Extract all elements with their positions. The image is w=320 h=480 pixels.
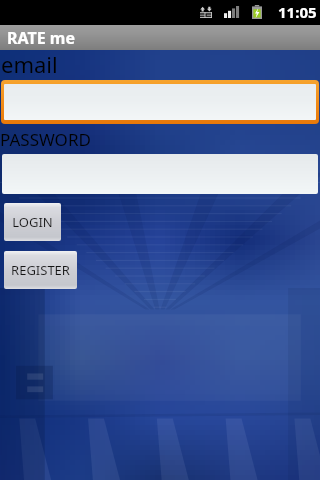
- other: Battery charging: [252, 5, 262, 19]
- other: Signal strength: [224, 6, 240, 18]
- other: Mobile data 3G: [200, 6, 212, 18]
- staticText: email: [1, 49, 58, 79]
- button[interactable]: REGISTER: [4, 251, 77, 289]
- button[interactable]: [4, 84, 316, 120]
- staticText: 11:05: [278, 2, 317, 22]
- button[interactable]: LOGIN: [4, 203, 61, 241]
- staticText: LOGIN: [12, 213, 53, 231]
- staticText: PASSWORD: [0, 128, 91, 151]
- staticText: REGISTER: [11, 261, 70, 279]
- button[interactable]: [2, 154, 318, 194]
- staticText: RATE me: [7, 27, 75, 49]
